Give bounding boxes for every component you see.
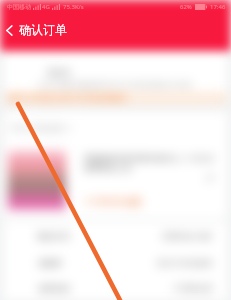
button[interactable]: 优惠券 [4,249,227,276]
button[interactable]: 配送方式 [4,222,227,249]
button[interactable]: 张先生 [4,48,227,92]
button[interactable]: 时尚女装旗舰店 > [4,112,227,142]
staticText: 北京市朝阳区建国路88号SOHO现代城A座1802室 [38,80,192,90]
staticText: 中国移动 [7,3,31,11]
staticText: 发票信息 [38,283,70,293]
staticText: 配送方式 [38,231,70,241]
staticText: 优惠券 [38,258,62,268]
staticText: 韩版修身休闲百搭外套女士春季新款上衣 [84,153,181,173]
staticText: 时尚女装旗舰店 > [4,122,73,133]
staticText: 4G [42,3,50,11]
staticText: 确认订单 [19,22,67,37]
staticText: 75.3K/s [63,3,84,11]
button[interactable]: 发票信息 [4,276,227,300]
staticText: 普通快递 包邮 [162,230,213,241]
staticText: 不需要发票 [173,283,213,293]
button[interactable]: Back [0,18,19,42]
staticText: 张先生 [47,67,71,77]
staticText: ￥199.00 优惠 [84,195,142,207]
staticText: 17:46 [210,3,226,11]
staticText: 62% [180,3,192,11]
staticText: 预计3-5天送达 支持七天无理由退换货 [4,93,127,103]
